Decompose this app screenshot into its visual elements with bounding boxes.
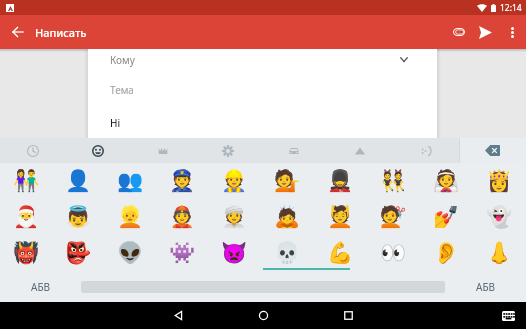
button[interactable]: Emoji [0,235,52,271]
button[interactable]: Emoji [156,199,208,235]
button[interactable]: Emoji [104,199,156,235]
button[interactable]: Emoji [208,199,261,235]
staticText: 💆 [327,205,354,230]
button[interactable]: Emoji [0,199,52,235]
staticText: 💁 [274,169,301,194]
staticText: 🎅 [13,205,40,230]
staticText: 👼 [65,205,92,230]
staticText: 👀 [380,241,407,266]
button[interactable]: Emoji [473,199,526,235]
staticText: 👽 [117,241,144,266]
button[interactable]: Recent [0,138,65,163]
staticText: 👂 [433,241,460,266]
button[interactable]: Emoji [52,199,104,235]
button[interactable]: Emoji [104,235,156,271]
button[interactable]: Emoji [420,199,473,235]
button[interactable]: Emoji [314,163,367,199]
staticText: 👫 [13,169,40,194]
staticText: 💂 [327,169,354,194]
staticText: 👯 [380,169,407,194]
button[interactable]: Emoji [367,163,420,199]
staticText: 👥 [117,169,144,194]
button[interactable]: Smileys [65,138,130,163]
staticText: 💪 [327,241,354,266]
button[interactable]: Emoji [208,163,261,199]
staticText: 👸 [486,169,513,194]
button[interactable]: АБВ [445,271,526,302]
button[interactable]: Back [136,302,221,329]
button[interactable]: Recent apps [306,302,391,329]
button[interactable]: Emoji [314,235,367,271]
button[interactable]: Delete [459,138,526,163]
staticText: 👱 [117,205,144,230]
button[interactable]: АБВ [0,271,81,302]
staticText: 💇 [380,205,407,230]
button[interactable]: Symbols [393,138,459,163]
button[interactable]: Emoji [52,163,104,199]
button[interactable]: Emoji [420,163,473,199]
button[interactable]: Switch keyboard [490,302,526,329]
staticText: 👹 [13,241,40,266]
staticText: АБВ [31,280,51,294]
button[interactable]: Attach file [446,15,472,49]
button[interactable]: Travel [261,138,327,163]
button[interactable]: Emoji [156,163,208,199]
button[interactable]: Emoji [420,235,473,271]
button[interactable]: Emoji [156,235,208,271]
staticText: 👿 [221,241,248,266]
staticText: 💅 [433,205,460,230]
staticText: 👰 [433,169,460,194]
staticText: 12:14 [500,2,522,14]
button[interactable]: Animals [130,138,195,163]
staticText: 👾 [169,241,196,266]
staticText: Написать [35,25,87,40]
staticText: Тема [110,83,134,97]
staticText: 👲 [169,205,196,230]
button[interactable]: Emoji [473,235,526,271]
staticText: 👃 [486,241,513,266]
staticText: Hi [110,116,121,130]
button[interactable]: Emoji [208,235,261,271]
staticText: 🙇 [274,205,301,230]
button[interactable]: More options [498,15,526,49]
button[interactable]: Emoji [261,163,314,199]
staticText: 👻 [486,205,513,230]
button[interactable]: Emoji [473,163,526,199]
staticText: Кому [110,53,135,67]
button[interactable]: Home [221,302,306,329]
button[interactable]: Objects [327,138,393,163]
button[interactable]: Emoji [367,235,420,271]
staticText: 👮 [169,169,196,194]
staticText: 👺 [65,241,92,266]
button[interactable]: Emoji [261,235,314,271]
staticText: АБВ [476,280,496,294]
button[interactable]: Emoji [104,163,156,199]
staticText: 💀 [274,241,301,266]
staticText: 👳 [221,205,248,230]
button[interactable]: Emoji [314,199,367,235]
button[interactable]: Emoji [52,235,104,271]
button[interactable]: Food [195,138,261,163]
button[interactable]: Send [472,15,498,49]
button[interactable]: Emoji [0,163,52,199]
staticText: 👤 [65,169,92,194]
button[interactable]: Emoji [261,199,314,235]
staticText: 👷 [221,169,248,194]
button[interactable]: Emoji [367,199,420,235]
button[interactable]: Back [0,15,35,49]
